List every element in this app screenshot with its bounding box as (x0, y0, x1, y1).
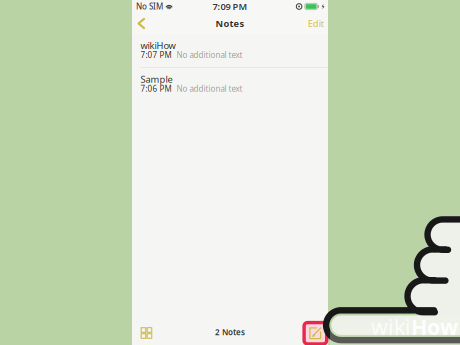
staticText: Sample (140, 73, 172, 85)
button[interactable]: Gallery view (132, 319, 160, 343)
staticText: Notes (215, 17, 244, 30)
staticText: wikiHow (140, 39, 175, 52)
staticText: No additional text (176, 83, 242, 94)
staticText: 2 Notes (215, 327, 245, 337)
staticText: No SIM (136, 1, 163, 12)
staticText: 7:07 PM (140, 50, 171, 60)
button[interactable]: wikiHow (132, 34, 328, 67)
staticText: wiki (371, 313, 411, 341)
staticText: No additional text (176, 50, 242, 60)
staticText: How (411, 313, 458, 341)
button[interactable]: Edit (301, 14, 328, 33)
staticText: 7:06 PM (140, 83, 171, 94)
button[interactable]: Sample (132, 68, 328, 101)
staticText: Edit (308, 17, 324, 30)
staticText: 7:09 PM (212, 0, 247, 13)
button[interactable]: Back (132, 15, 152, 32)
button[interactable]: New note (302, 316, 328, 345)
